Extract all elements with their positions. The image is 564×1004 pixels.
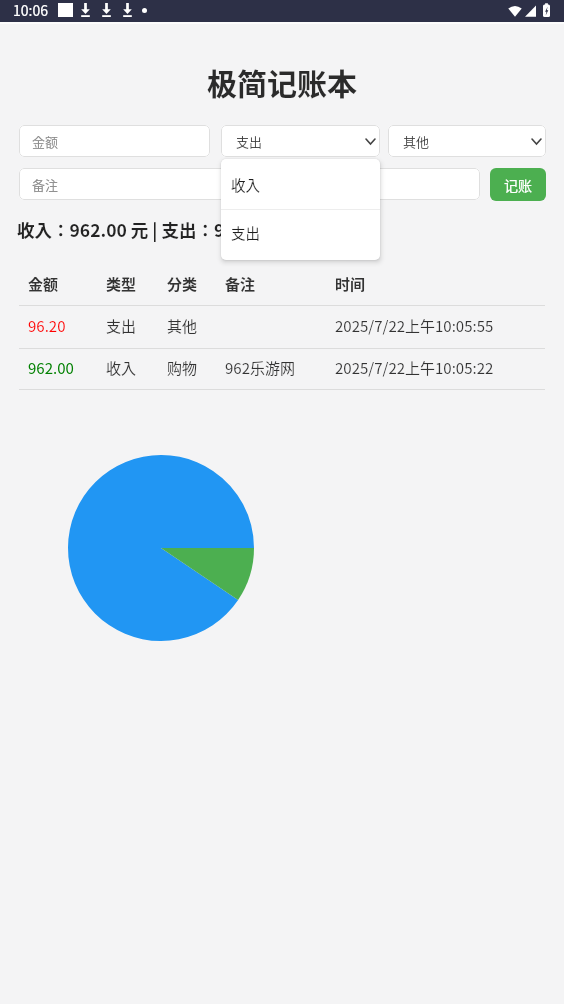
button[interactable]: 收入 xyxy=(221,159,380,209)
other: Download xyxy=(81,3,90,17)
staticText: 时间 xyxy=(335,273,366,295)
staticText: 962乐游网 xyxy=(225,357,295,379)
other: Download xyxy=(102,3,111,17)
staticText: 2025/7/22上午10:05:55 xyxy=(335,315,494,337)
button[interactable]: 金额 xyxy=(19,265,545,305)
other: Wifi xyxy=(508,4,522,17)
button[interactable]: 记账 xyxy=(490,168,546,201)
staticText: 分类 xyxy=(167,273,198,295)
staticText: 极简记账本 xyxy=(0,60,564,103)
staticText: 金额 xyxy=(32,132,59,151)
staticText: 2025/7/22上午10:05:22 xyxy=(335,357,494,379)
other: Battery xyxy=(543,3,550,17)
staticText: 其他 xyxy=(403,132,430,151)
button[interactable]: 支出 xyxy=(221,125,380,157)
staticText: 收入：962.00 元 | 支出：96.20 元 xyxy=(17,217,283,242)
staticText: 金额 xyxy=(28,273,59,295)
staticText: 支出 xyxy=(236,132,263,151)
staticText: 支出 xyxy=(106,315,137,337)
staticText: 收入 xyxy=(106,357,137,379)
staticText: 96.20 xyxy=(28,315,66,337)
button[interactable]: 金额 xyxy=(19,125,210,157)
button[interactable]: 备注 xyxy=(19,168,480,200)
staticText: 备注 xyxy=(225,273,256,295)
button[interactable]: 962.00 xyxy=(19,349,545,389)
button[interactable]: 其他 xyxy=(388,125,546,157)
staticText: 支出 xyxy=(231,222,260,243)
staticText: 962.00 xyxy=(28,357,74,379)
button[interactable]: 支出 xyxy=(221,210,380,254)
staticText: 购物 xyxy=(167,357,198,379)
staticText: 收入 xyxy=(231,174,260,195)
other: Signal xyxy=(525,4,536,17)
staticText: 类型 xyxy=(106,273,137,295)
button[interactable]: 96.20 xyxy=(19,306,545,348)
staticText: 10:06 xyxy=(13,0,48,20)
other: Download xyxy=(123,3,132,17)
staticText: 其他 xyxy=(167,315,198,337)
staticText: 备注 xyxy=(32,175,59,194)
staticText: 记账 xyxy=(504,175,532,195)
